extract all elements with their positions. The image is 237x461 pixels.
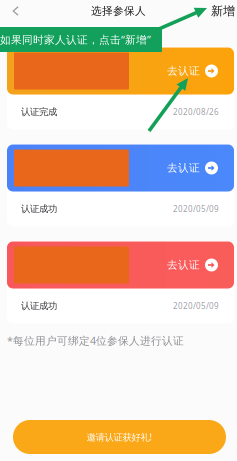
staticText: 去认证 — [167, 258, 200, 271]
staticText: 认证完成 — [21, 106, 57, 118]
staticText: 如果同时家人认证，点击“新增” — [0, 32, 151, 47]
button[interactable]: Back — [0, 0, 34, 22]
staticText: 认证成功 — [21, 300, 57, 312]
staticText: 邀请认证获好礼! — [86, 431, 152, 443]
staticText: 2020/08/26 — [173, 107, 219, 117]
button[interactable]: 去认证 — [7, 241, 234, 323]
staticText: 去认证 — [167, 64, 200, 77]
staticText: 认证成功 — [21, 203, 57, 215]
staticText: 2020/05/09 — [173, 301, 219, 311]
button[interactable]: 新增 — [203, 0, 237, 22]
staticText: 2020/05/09 — [173, 204, 219, 214]
button[interactable]: 邀请认证获好礼! — [13, 420, 226, 454]
staticText: 新增 — [211, 4, 235, 18]
staticText: 去认证 — [167, 161, 200, 174]
button[interactable]: 去认证 — [7, 144, 234, 226]
button[interactable]: 去认证 — [7, 47, 234, 129]
staticText: 选择参保人 — [91, 4, 146, 17]
staticText: *每位用户可绑定4位参保人进行认证 — [7, 333, 184, 348]
